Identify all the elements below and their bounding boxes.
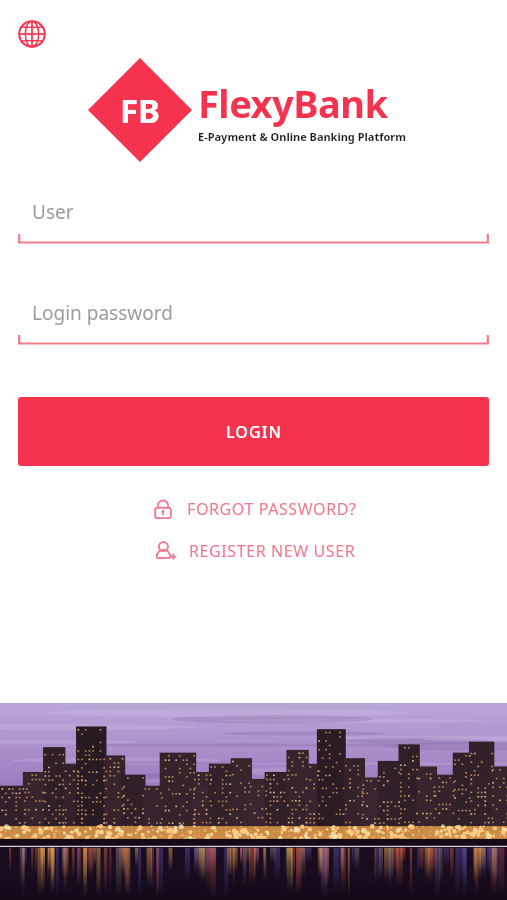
- staticText: FORGOT PASSWORD?: [187, 498, 357, 520]
- button[interactable]: LOGIN: [18, 397, 489, 466]
- staticText: FlexyBank: [198, 77, 388, 129]
- button[interactable]: Login password: [18, 291, 489, 345]
- button[interactable]: REGISTER NEW USER: [0, 538, 507, 564]
- staticText: REGISTER NEW USER: [189, 540, 356, 562]
- button[interactable]: User: [18, 190, 489, 244]
- button[interactable]: Change language: [12, 14, 52, 54]
- staticText: LOGIN: [226, 421, 282, 443]
- staticText: E-Payment & Online Banking Platform: [198, 129, 406, 144]
- button[interactable]: FORGOT PASSWORD?: [0, 496, 507, 522]
- staticText: User: [32, 199, 74, 225]
- staticText: FB: [120, 88, 161, 133]
- staticText: Login password: [32, 300, 173, 326]
